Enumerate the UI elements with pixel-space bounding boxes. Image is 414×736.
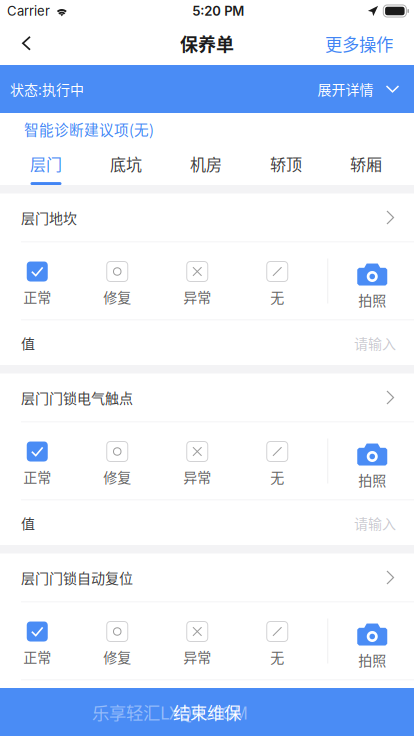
button[interactable]: 轿顶 (246, 145, 326, 185)
button[interactable]: 异常 (157, 242, 237, 319)
staticText: 正常 (23, 466, 51, 487)
staticText: 拍照 (358, 289, 386, 310)
staticText: 状态:执行中 (10, 79, 84, 99)
button[interactable]: 修复 (77, 602, 157, 679)
button[interactable]: 正常 (0, 422, 77, 499)
staticText: 修复 (103, 286, 131, 307)
button[interactable]: 异常 (157, 422, 237, 499)
button[interactable]: 层门门锁电气触点 (0, 373, 414, 421)
button[interactable]: 拍照 (336, 602, 408, 679)
staticText: 异常 (183, 646, 211, 667)
staticText: 请输入 (354, 333, 396, 353)
button[interactable]: 拍照 (336, 422, 408, 499)
button[interactable]: 修复 (77, 422, 157, 499)
staticText: 乐享轻汇LXQH.COM (92, 699, 248, 725)
button[interactable]: 层门 (6, 145, 86, 185)
button[interactable]: 智能诊断建议项(无) (0, 113, 414, 145)
staticText: Carrier (7, 3, 50, 19)
staticText: 修复 (103, 466, 131, 487)
staticText: 底坑 (110, 152, 142, 175)
staticText: 正常 (23, 646, 51, 667)
button[interactable]: 乐享轻汇LXQH.COM (0, 688, 414, 736)
button[interactable]: 机房 (166, 145, 246, 185)
staticText: 无 (270, 466, 284, 487)
button[interactable]: 层门地坎 (0, 193, 414, 241)
button[interactable]: 层门门锁自动复位 (0, 553, 414, 601)
staticText: 更多操作 (325, 31, 393, 56)
staticText: 展开详情 (317, 79, 373, 99)
staticText: 层门门锁电气触点 (21, 387, 133, 408)
button[interactable]: 正常 (0, 602, 77, 679)
staticText: 保养单 (180, 30, 234, 57)
button[interactable]: 值 (0, 680, 414, 725)
button[interactable]: 值 (0, 500, 414, 545)
staticText: 层门 (30, 152, 62, 175)
button[interactable]: 无 (237, 242, 317, 319)
button[interactable]: 无 (237, 422, 317, 499)
button[interactable]: 轿厢 (326, 145, 406, 185)
staticText: 轿厢 (350, 152, 382, 175)
staticText: 正常 (23, 286, 51, 307)
button[interactable]: 更多操作 (311, 22, 414, 65)
staticText: 无 (270, 646, 284, 667)
staticText: 值 (21, 513, 35, 533)
button[interactable]: 无 (237, 602, 317, 679)
button[interactable]: 值 (0, 320, 414, 365)
staticText: 无 (270, 286, 284, 307)
staticText: 智能诊断建议项(无) (24, 118, 154, 140)
button[interactable]: 拍照 (336, 242, 408, 319)
button[interactable]: 修复 (77, 242, 157, 319)
staticText: 修复 (103, 646, 131, 667)
staticText: 轿顶 (270, 152, 302, 175)
staticText: 异常 (183, 286, 211, 307)
staticText: 层门地坎 (21, 207, 77, 228)
staticText: 拍照 (358, 469, 386, 490)
staticText: 结束维保 (173, 699, 241, 725)
staticText: 5:20 PM (192, 3, 244, 19)
button[interactable]: 底坑 (86, 145, 166, 185)
staticText: 请输入 (354, 513, 396, 533)
button[interactable]: 状态:执行中 (0, 65, 414, 113)
button[interactable]: 异常 (157, 602, 237, 679)
button[interactable]: 正常 (0, 242, 77, 319)
staticText: 拍照 (358, 649, 386, 670)
staticText: 机房 (190, 152, 222, 175)
staticText: 值 (21, 333, 35, 353)
button[interactable]: Back (0, 22, 49, 65)
staticText: 层门门锁自动复位 (21, 567, 133, 588)
staticText: 异常 (183, 466, 211, 487)
